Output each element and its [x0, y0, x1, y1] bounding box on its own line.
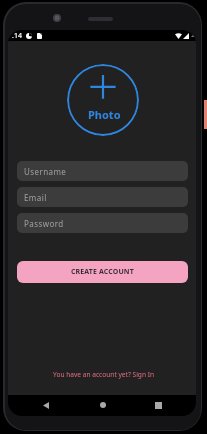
button[interactable]: Email	[17, 187, 188, 207]
staticText: Photo	[88, 107, 121, 122]
button[interactable]: Back	[37, 396, 55, 414]
button[interactable]: You have an account yet? Sign In	[49, 368, 159, 381]
button[interactable]: Password	[17, 213, 188, 233]
button[interactable]: Photo	[67, 64, 139, 136]
staticText: You have an account yet? Sign In	[53, 370, 155, 379]
staticText: Username	[24, 166, 67, 177]
button[interactable]: Home	[94, 396, 112, 414]
staticText: .14	[12, 31, 22, 41]
button[interactable]: Username	[17, 161, 188, 181]
staticText: CREATE ACCOUNT	[71, 267, 134, 277]
button[interactable]: Recent apps	[149, 396, 167, 414]
button[interactable]: CREATE ACCOUNT	[17, 261, 188, 283]
staticText: Email	[24, 192, 47, 203]
staticText: Password	[24, 218, 64, 229]
